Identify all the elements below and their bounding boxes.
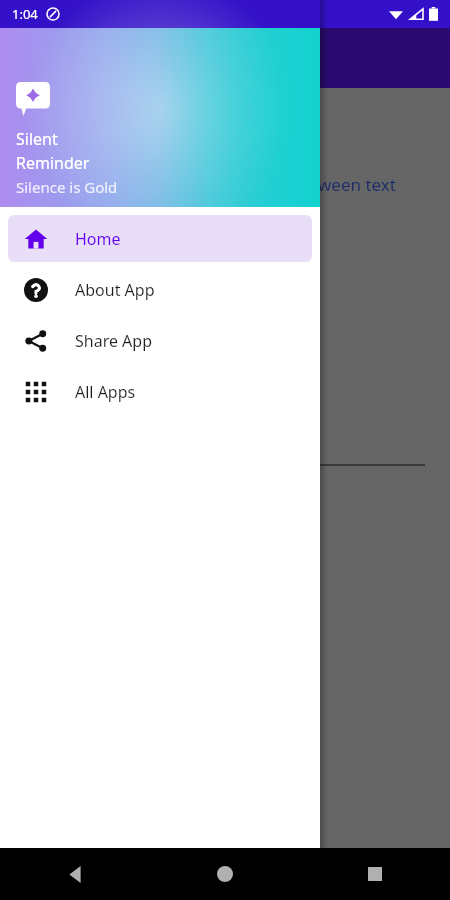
staticText: Silent xyxy=(16,128,58,150)
button[interactable]: Recent apps xyxy=(300,848,450,900)
button[interactable]: Home xyxy=(150,848,300,900)
staticText: Home xyxy=(75,228,121,250)
button[interactable]: Back xyxy=(0,848,150,900)
button[interactable]: Share App xyxy=(8,317,312,364)
staticText: Silence is Gold xyxy=(16,177,118,197)
button[interactable]: About App xyxy=(8,266,312,313)
staticText: About App xyxy=(75,279,155,301)
button[interactable]: All Apps xyxy=(8,368,312,415)
button[interactable]: Home xyxy=(8,215,312,262)
staticText: All Apps xyxy=(75,381,136,403)
staticText: 1:04 xyxy=(12,5,38,23)
staticText: Share App xyxy=(75,330,153,352)
staticText: Reminder xyxy=(16,152,90,174)
staticText: ween text xyxy=(318,173,396,196)
